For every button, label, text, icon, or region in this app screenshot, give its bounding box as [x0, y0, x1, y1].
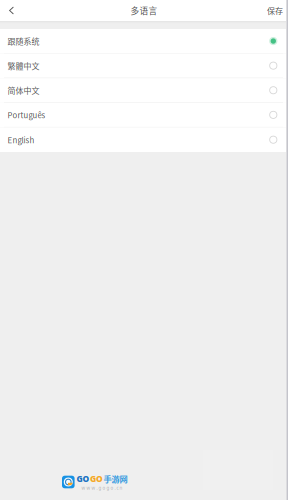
button[interactable]: Português: [0, 103, 288, 127]
staticText: Português: [7, 109, 45, 120]
staticText: 保存: [267, 5, 283, 16]
button[interactable]: 跟随系统: [0, 29, 288, 54]
staticText: English: [7, 134, 34, 145]
button[interactable]: Back: [0, 0, 23, 21]
button[interactable]: 简体中文: [0, 78, 288, 103]
button[interactable]: English: [0, 127, 288, 152]
staticText: w w w . g o g o . c n: [82, 485, 123, 491]
staticText: 手游网: [104, 473, 128, 485]
button[interactable]: 保存: [262, 0, 288, 21]
staticText: 多语言: [130, 4, 157, 17]
staticText: 简体中文: [7, 84, 39, 96]
button[interactable]: 繁體中文: [0, 54, 288, 78]
staticText: GO: [90, 473, 103, 484]
staticText: 跟随系统: [7, 35, 39, 47]
staticText: 繁體中文: [7, 60, 39, 71]
staticText: GO: [77, 473, 90, 484]
